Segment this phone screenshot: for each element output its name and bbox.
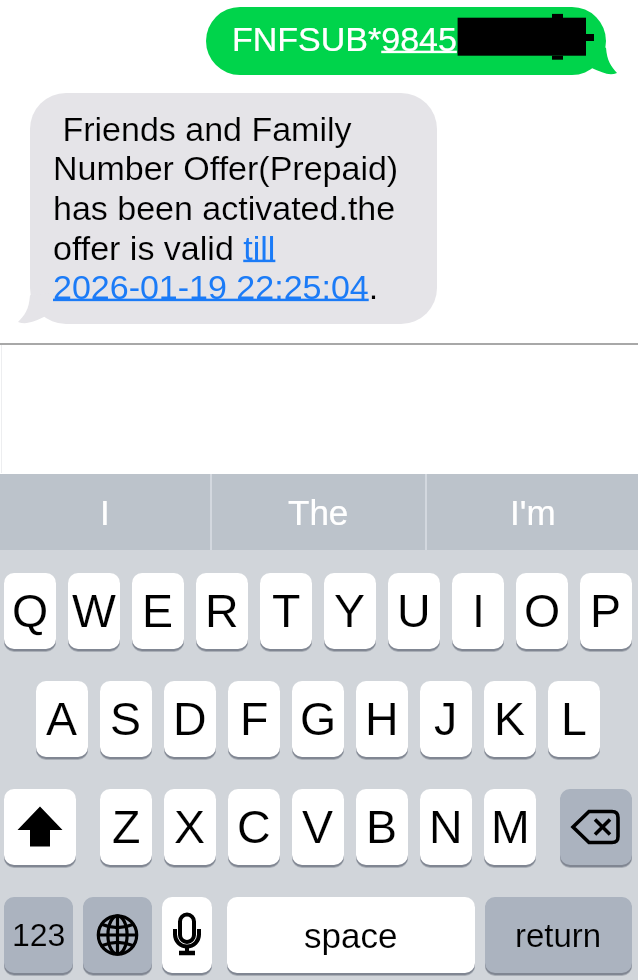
staticText: G [300,693,337,745]
button[interactable]: I'm [427,474,638,550]
staticText: T [272,585,301,637]
button[interactable]: G [292,681,344,757]
staticText: N [429,801,463,853]
staticText: P [590,585,622,637]
button[interactable]: space [227,897,475,973]
button[interactable]: L [548,681,600,757]
button[interactable]: V [292,789,344,865]
staticText: C [237,801,271,853]
staticText: I'm [510,493,556,532]
button[interactable]: Backspace [560,789,632,865]
staticText: return [515,917,602,954]
button[interactable]: D [164,681,216,757]
button[interactable]: E [132,573,184,649]
button[interactable]: I [452,573,504,649]
staticText: F [240,693,269,745]
button[interactable]: A [36,681,88,757]
button[interactable]: Shift [4,789,76,865]
staticText: J [434,693,458,745]
staticText: The [288,493,349,532]
button[interactable]: F [228,681,280,757]
button[interactable]: B [356,789,408,865]
button[interactable]: Q [4,573,56,649]
staticText: O [524,585,561,637]
button[interactable]: K [484,681,536,757]
staticText: E [142,585,174,637]
staticText: Number Offer(Prepaid) [53,149,399,187]
staticText: offer is valid till [53,229,276,267]
button[interactable]: Dictate [162,897,212,973]
staticText: W [72,585,116,637]
staticText: B [366,801,398,853]
button[interactable]: R [196,573,248,649]
button[interactable]: return [485,897,632,973]
button[interactable]: M [484,789,536,865]
button[interactable]: C [228,789,280,865]
button[interactable]: The [212,474,425,550]
staticText: X [174,801,206,853]
button[interactable]: W [68,573,120,649]
staticText: S [110,693,142,745]
button[interactable]: N [420,789,472,865]
button[interactable]: Z [100,789,152,865]
staticText: Y [334,585,366,637]
button[interactable]: I [0,474,210,550]
staticText: FNFSUB*9845 [232,20,457,58]
button[interactable]: O [516,573,568,649]
staticText: I [100,493,110,532]
staticText: V [302,801,334,853]
staticText: U [397,585,431,637]
button[interactable]: U [388,573,440,649]
button[interactable]: Next keyboard [83,897,152,973]
staticText: Friends and Family [53,110,352,148]
staticText: Z [112,801,141,853]
staticText: I [472,585,485,637]
staticText: K [494,693,526,745]
button[interactable]: P [580,573,632,649]
staticText: M [491,801,530,853]
button[interactable]: J [420,681,472,757]
staticText: Q [12,585,49,637]
staticText: space [304,916,398,955]
button[interactable]: H [356,681,408,757]
button[interactable]: Y [324,573,376,649]
staticText: 2026-01-19 22:25:04. [53,268,379,306]
button[interactable]: S [100,681,152,757]
staticText: D [173,693,207,745]
staticText: R [205,585,239,637]
staticText: 123 [12,917,66,953]
button[interactable]: 123 [4,897,73,973]
staticText: H [365,693,399,745]
button[interactable]: X [164,789,216,865]
staticText: L [561,693,587,745]
button[interactable]: T [260,573,312,649]
staticText: has been activated.the [53,189,396,227]
staticText: A [46,693,78,745]
